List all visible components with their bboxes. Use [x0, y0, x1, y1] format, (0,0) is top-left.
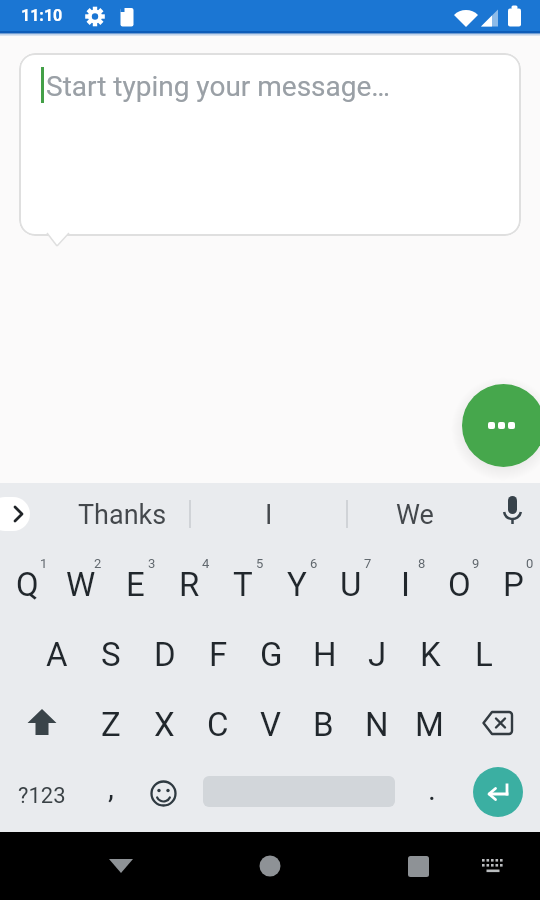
button[interactable] — [469, 842, 517, 890]
button[interactable]: W — [54, 545, 108, 615]
staticText: I — [265, 499, 273, 531]
button[interactable]: Start typing your message… — [19, 53, 521, 236]
staticText: 2 — [94, 556, 102, 571]
staticText: E — [126, 565, 145, 604]
button[interactable]: J — [351, 615, 404, 685]
staticText: J — [368, 635, 387, 674]
staticText: ?123 — [18, 783, 66, 809]
button[interactable]: Y — [270, 545, 324, 615]
staticText: W — [66, 565, 96, 604]
staticText: R — [179, 565, 200, 604]
button[interactable]: We — [347, 483, 482, 545]
staticText: K — [420, 635, 441, 674]
button[interactable]: Q — [0, 545, 54, 615]
button[interactable]: U — [324, 545, 378, 615]
button[interactable]: C — [191, 685, 244, 755]
staticText: . — [428, 772, 436, 807]
button[interactable] — [394, 842, 442, 890]
staticText: M — [415, 705, 444, 744]
staticText: Thanks — [78, 499, 167, 531]
staticText: , — [108, 770, 114, 805]
button[interactable]: ?123 — [0, 755, 84, 832]
button[interactable]: A — [30, 615, 84, 685]
button[interactable]: F — [192, 615, 245, 685]
button[interactable]: Z — [84, 685, 138, 755]
staticText: D — [154, 635, 176, 674]
button[interactable]: N — [350, 685, 403, 755]
button[interactable]: B — [297, 685, 350, 755]
button[interactable] — [0, 497, 30, 531]
button[interactable] — [0, 685, 84, 755]
button[interactable]: E — [108, 545, 162, 615]
staticText: F — [209, 635, 228, 674]
staticText: B — [313, 705, 334, 744]
staticText: V — [260, 705, 282, 744]
staticText: I — [401, 565, 410, 604]
staticText: P — [503, 565, 524, 604]
staticText: O — [448, 565, 471, 604]
button[interactable]: P — [486, 545, 540, 615]
staticText: Q — [16, 565, 39, 604]
button[interactable]: V — [244, 685, 297, 755]
button[interactable]: . — [407, 755, 456, 832]
staticText: We — [396, 499, 434, 531]
button[interactable] — [473, 767, 523, 817]
staticText: Start typing your message… — [46, 70, 391, 103]
button[interactable]: , — [84, 755, 137, 832]
staticText: U — [340, 565, 362, 604]
staticText: 9 — [472, 556, 480, 571]
staticText: H — [313, 635, 337, 674]
button[interactable]: G — [245, 615, 298, 685]
button[interactable]: X — [138, 685, 191, 755]
staticText: L — [475, 635, 493, 674]
staticText: G — [260, 635, 283, 674]
staticText: A — [46, 635, 68, 674]
button[interactable] — [137, 755, 190, 832]
button[interactable] — [462, 384, 540, 467]
staticText: Z — [101, 705, 121, 744]
staticText: X — [154, 705, 175, 744]
staticText: C — [207, 705, 229, 744]
button[interactable]: I — [190, 483, 347, 545]
button[interactable]: L — [457, 615, 510, 685]
staticText: N — [365, 705, 389, 744]
button[interactable]: Thanks — [40, 483, 204, 545]
button[interactable]: S — [84, 615, 138, 685]
staticText: T — [233, 565, 253, 604]
button[interactable] — [97, 842, 145, 890]
staticText: 7 — [364, 556, 372, 571]
staticText: Y — [287, 565, 307, 604]
staticText: 11:10 — [21, 6, 63, 25]
button[interactable] — [246, 842, 294, 890]
button[interactable]: O — [432, 545, 486, 615]
staticText: 1 — [40, 556, 48, 571]
staticText: 0 — [526, 556, 534, 571]
button[interactable] — [456, 685, 540, 755]
staticText: 8 — [418, 556, 426, 571]
staticText: 3 — [148, 556, 156, 571]
staticText: S — [101, 635, 121, 674]
button[interactable]: I — [378, 545, 432, 615]
button[interactable]: M — [403, 685, 456, 755]
button[interactable]: K — [404, 615, 457, 685]
button[interactable]: R — [162, 545, 216, 615]
staticText: 5 — [256, 556, 264, 571]
button[interactable]: H — [298, 615, 351, 685]
button[interactable]: T — [216, 545, 270, 615]
staticText: 4 — [202, 556, 210, 571]
staticText: 6 — [310, 556, 318, 571]
button[interactable]: D — [138, 615, 192, 685]
